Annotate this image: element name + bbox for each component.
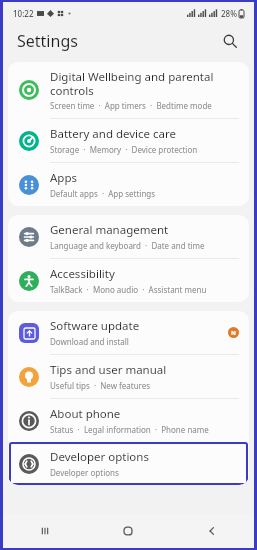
staticText: Developer options (50, 449, 149, 465)
staticText: Developer options (50, 467, 119, 478)
button[interactable]: Search (218, 29, 242, 53)
button[interactable]: Recents (3, 514, 86, 548)
staticText: N (231, 329, 236, 337)
button[interactable]: Software update (8, 311, 249, 354)
button[interactable]: Developer options (9, 442, 248, 485)
staticText: Screen time · App timers · Bedtime mode (50, 100, 212, 111)
staticText: 10:22 (13, 8, 34, 19)
button[interactable]: Digital Wellbeing and parental controls (8, 62, 249, 118)
staticText: Status · Legal information · Phone name (50, 424, 209, 435)
button[interactable]: General management (8, 215, 249, 258)
staticText: About phone (50, 406, 121, 422)
staticText: Download and install (50, 336, 129, 347)
staticText: Apps (50, 170, 78, 186)
staticText: Settings (17, 30, 78, 52)
button[interactable]: Accessibility (8, 259, 249, 302)
staticText: Language and keyboard · Date and time (50, 240, 205, 251)
staticText: Tips and user manual (50, 362, 167, 378)
button[interactable]: Battery and device care (8, 119, 249, 162)
button[interactable]: Back (170, 514, 254, 548)
staticText: General management (50, 222, 169, 238)
staticText: Digital Wellbeing and parental controls (50, 69, 214, 98)
button[interactable]: About phone (8, 399, 249, 442)
staticText: Software update (50, 318, 140, 334)
staticText: Accessibility (50, 266, 115, 282)
staticText: TalkBack · Mono audio · Assistant menu (50, 284, 207, 295)
button[interactable]: Tips and user manual (8, 355, 249, 398)
staticText: Useful tips · New features (50, 380, 151, 391)
staticText: 28% (221, 8, 237, 19)
staticText: Default apps · App settings (50, 188, 156, 199)
button[interactable]: Home (86, 514, 170, 548)
staticText: Storage · Memory · Device protection (50, 144, 198, 155)
staticText: Battery and device care (50, 126, 177, 142)
button[interactable]: Apps (8, 163, 249, 206)
